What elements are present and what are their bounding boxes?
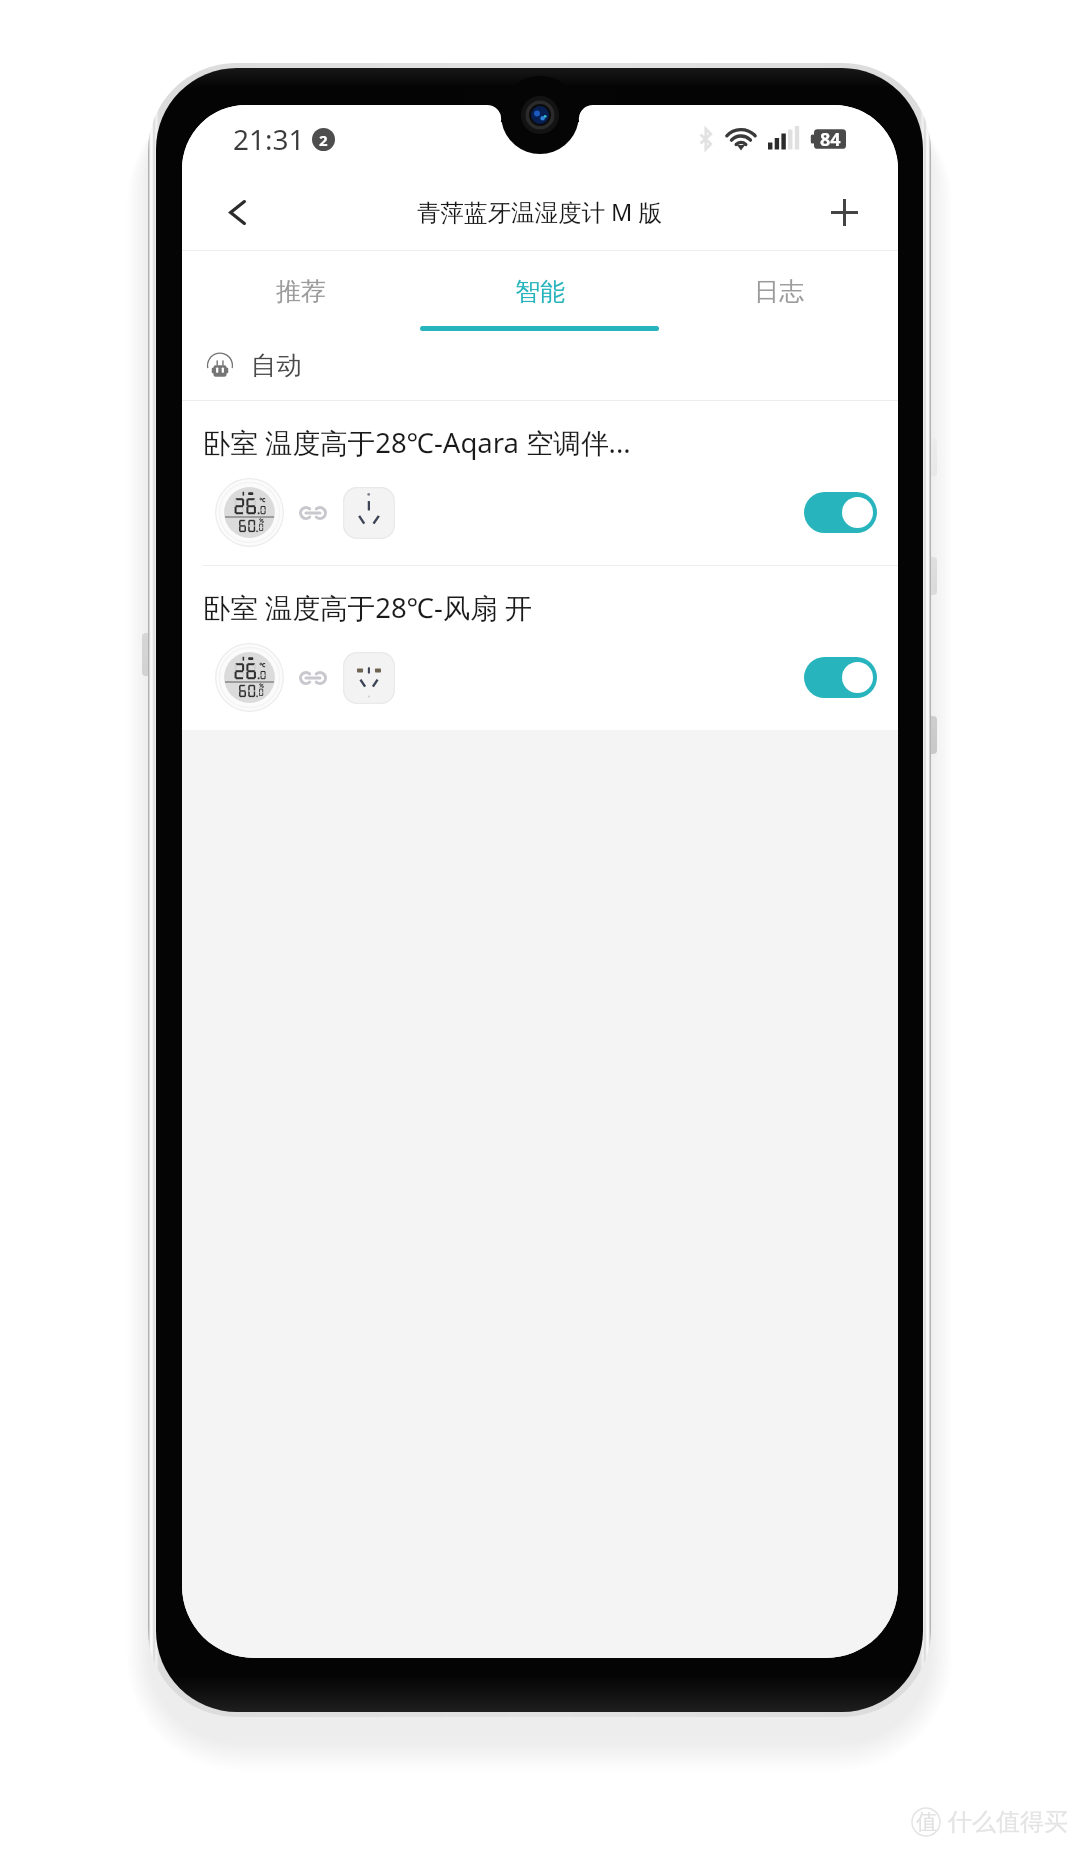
staticText: 84 (820, 127, 841, 152)
button[interactable]: 智能 (420, 251, 659, 332)
staticText: 青萍蓝牙温湿度计 M 版 (417, 196, 663, 228)
staticText: 21:31 (233, 120, 305, 158)
staticText: 什么值得买 (948, 1807, 1068, 1837)
button[interactable]: Enable automation (804, 657, 877, 698)
staticText: 值 (916, 1809, 937, 1835)
button[interactable]: Enable automation (804, 492, 877, 533)
staticText: 智能 (515, 276, 565, 307)
staticText: 日志 (754, 276, 804, 307)
staticText: 卧室 温度高于28℃-风扇 开 (203, 589, 533, 627)
button[interactable]: 卧室 温度高于28℃-Aqara 空调伴... (182, 401, 898, 565)
staticText: 卧室 温度高于28℃-Aqara 空调伴... (203, 424, 631, 462)
button[interactable]: 日志 (659, 251, 898, 332)
button[interactable]: Back (209, 184, 265, 240)
button[interactable]: Add (816, 184, 872, 240)
button[interactable]: 推荐 (182, 251, 420, 332)
staticText: 自动 (251, 349, 302, 381)
button[interactable]: 卧室 温度高于28℃-风扇 开 (182, 566, 898, 730)
staticText: 2 (319, 130, 328, 150)
staticText: 推荐 (276, 276, 326, 307)
